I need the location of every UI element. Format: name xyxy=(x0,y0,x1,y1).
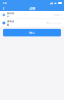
button[interactable]: 确认 xyxy=(3,29,61,36)
staticText: 设置 xyxy=(29,6,35,11)
button[interactable]: Back xyxy=(2,6,6,11)
button[interactable]: 我的账户 xyxy=(0,11,64,19)
staticText: 版本 1.0.3 (4021) xyxy=(47,22,62,24)
staticText: 通用设置 xyxy=(7,20,14,26)
staticText: 我的账户 xyxy=(7,11,14,18)
staticText: 9:41 xyxy=(2,1,6,5)
staticText: 确认 xyxy=(29,31,35,35)
staticText: 已实名 xyxy=(53,13,59,16)
button[interactable]: 通用设置 xyxy=(0,19,64,27)
